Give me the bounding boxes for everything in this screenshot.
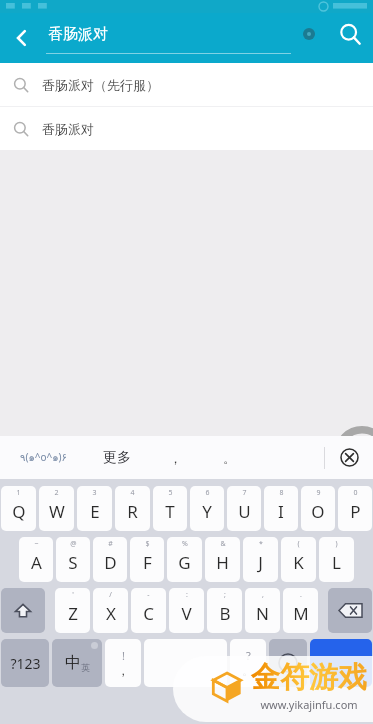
staticText: ! (122, 648, 125, 663)
staticText: 香肠派对（先行服） (42, 77, 159, 93)
button[interactable]: @ (56, 537, 90, 582)
button[interactable]: ) (319, 537, 354, 582)
button[interactable]: 。 (202, 436, 256, 479)
staticText: 1 (16, 488, 21, 498)
staticText: Z (68, 602, 78, 625)
button[interactable]: % (167, 537, 202, 582)
button[interactable]: $ (130, 537, 164, 582)
button[interactable]: 5 (153, 486, 187, 531)
button[interactable]: & (205, 537, 240, 582)
button[interactable]: ， (148, 436, 202, 479)
staticText: K (293, 551, 304, 574)
button[interactable]: 0 (338, 486, 372, 531)
button[interactable]: Clear text (291, 13, 327, 63)
button[interactable]: 香肠派对（先行服） (0, 63, 373, 106)
staticText: 香肠派对 (48, 25, 108, 44)
staticText: ， (117, 663, 129, 678)
button[interactable]: 1 (1, 486, 36, 531)
staticText: E (90, 500, 100, 523)
button[interactable]: Emoji (269, 639, 307, 687)
staticText: 3 (92, 488, 97, 498)
staticText: N (256, 602, 269, 625)
staticText: $ (145, 539, 150, 549)
button[interactable]: Backspace (328, 588, 372, 633)
button[interactable]: 香肠派对 (0, 107, 373, 150)
button[interactable]: Shift (1, 588, 45, 633)
staticText: - (147, 590, 150, 600)
button[interactable]: Enter (310, 639, 372, 687)
button[interactable]: 2 (39, 486, 74, 531)
staticText: , (262, 590, 264, 600)
button[interactable]: ?123 (1, 639, 49, 687)
button[interactable]: , (245, 588, 280, 633)
staticText: & (220, 539, 226, 549)
button[interactable]: Back (0, 13, 44, 63)
staticText: 6 (205, 488, 210, 498)
button[interactable]: ? (230, 639, 266, 687)
button[interactable]: Space (144, 639, 227, 687)
staticText: ， (169, 450, 182, 466)
button[interactable]: 7 (227, 486, 261, 531)
staticText: 香肠派对 (42, 121, 94, 137)
staticText: T (165, 500, 175, 523)
button[interactable]: 8 (264, 486, 298, 531)
staticText: H (216, 551, 229, 574)
staticText: ' (72, 590, 74, 600)
staticText: ? (246, 648, 251, 663)
button[interactable]: - (131, 588, 166, 633)
staticText: 7 (242, 488, 247, 498)
button[interactable]: 香肠派对 (44, 13, 291, 63)
staticText: 5 (168, 488, 173, 498)
button[interactable]: 更多 (86, 436, 148, 479)
staticText: L (332, 551, 341, 574)
staticText: 金符游戏 (251, 659, 367, 696)
staticText: ?123 (10, 654, 41, 673)
button[interactable]: Close keyboard (325, 436, 373, 479)
button[interactable]: Search (327, 13, 373, 63)
staticText: * (259, 539, 263, 549)
staticText: ; (224, 590, 226, 600)
staticText: 9 (316, 488, 321, 498)
staticText: ( (297, 539, 300, 549)
button[interactable]: 3 (77, 486, 112, 531)
staticText: S (68, 551, 78, 574)
staticText: % (182, 539, 188, 549)
button[interactable]: 6 (190, 486, 224, 531)
staticText: M (293, 602, 309, 625)
staticText: 8 (279, 488, 284, 498)
button[interactable]: / (93, 588, 128, 633)
staticText: Q (12, 500, 26, 523)
staticText: ~ (34, 539, 39, 549)
staticText: 4 (130, 488, 135, 498)
staticText: ) (335, 539, 338, 549)
staticText: 。 (242, 663, 254, 678)
button[interactable]: 4 (115, 486, 150, 531)
button[interactable]: ( (281, 537, 316, 582)
staticText: F (143, 551, 152, 574)
button[interactable]: # (93, 537, 127, 582)
button[interactable]: ~ (19, 537, 53, 582)
button[interactable]: . (283, 588, 318, 633)
staticText: . (300, 590, 302, 600)
staticText: R (127, 500, 138, 523)
button[interactable]: ! (105, 639, 141, 687)
button[interactable]: : (169, 588, 204, 633)
button[interactable]: ٩(๑^o^๑)۶ (0, 436, 86, 479)
button[interactable]: 9 (301, 486, 335, 531)
staticText: I (278, 500, 284, 523)
staticText: www.yikajinfu.com (260, 697, 358, 712)
staticText: O (311, 500, 325, 523)
staticText: 英 (81, 662, 90, 673)
staticText: 。 (223, 450, 236, 466)
staticText: W (49, 500, 65, 523)
staticText: X (106, 602, 116, 625)
staticText: 更多 (103, 449, 131, 467)
button[interactable]: * (243, 537, 278, 582)
button[interactable]: 中 (52, 639, 102, 687)
staticText: : (186, 590, 188, 600)
button[interactable]: ; (207, 588, 242, 633)
staticText: ٩(๑^o^๑)۶ (20, 450, 67, 466)
staticText: 中 (65, 653, 81, 673)
staticText: U (238, 500, 251, 523)
button[interactable]: ' (55, 588, 90, 633)
